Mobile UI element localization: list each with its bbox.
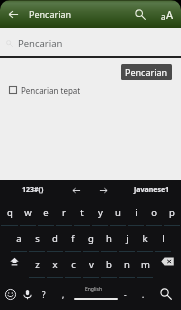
staticText: w <box>24 206 32 219</box>
staticText: p <box>169 206 175 219</box>
button[interactable]: Pencarian <box>0 28 181 58</box>
button[interactable]: s <box>28 224 46 250</box>
button[interactable]: Move cursor right <box>95 182 112 199</box>
staticText: Pencarian <box>29 8 72 20</box>
button[interactable]: , <box>55 286 71 302</box>
staticText: d <box>52 232 58 245</box>
button[interactable]: p <box>163 198 181 224</box>
staticText: i <box>135 206 138 219</box>
staticText: y <box>98 206 103 219</box>
button[interactable]: o <box>145 198 163 224</box>
button[interactable]: v <box>82 250 100 276</box>
staticText: Javanese1 <box>134 185 170 195</box>
button[interactable]: - <box>117 286 133 302</box>
staticText: l <box>162 232 165 245</box>
staticText: z <box>35 258 40 271</box>
staticText: h <box>106 232 112 245</box>
button[interactable]: i <box>127 198 145 224</box>
staticText: t <box>80 206 84 219</box>
button[interactable]: y <box>91 198 109 224</box>
staticText: o <box>151 206 157 219</box>
button[interactable]: English <box>70 276 122 310</box>
staticText: v <box>89 258 94 271</box>
button[interactable]: Backspace <box>154 250 181 276</box>
button[interactable]: q <box>0 198 19 224</box>
button[interactable]: 123#() <box>13 180 52 198</box>
button[interactable]: l <box>154 224 172 250</box>
button[interactable]: Shift <box>0 250 28 276</box>
staticText: q <box>7 206 13 219</box>
staticText: 123#() <box>22 185 44 195</box>
staticText: a <box>161 11 166 22</box>
button[interactable]: Pencarian <box>121 64 172 80</box>
button[interactable]: t <box>73 198 91 224</box>
button[interactable]: Text size <box>153 0 181 28</box>
button[interactable]: k <box>136 224 154 250</box>
button[interactable]: f <box>64 224 82 250</box>
button[interactable]: x <box>46 250 64 276</box>
button[interactable]: j <box>118 224 136 250</box>
staticText: u <box>115 206 121 219</box>
button[interactable]: m <box>136 250 154 276</box>
button[interactable]: d <box>46 224 64 250</box>
button[interactable]: Back <box>0 0 26 28</box>
button[interactable]: Move cursor left <box>68 182 85 199</box>
button[interactable]: Voice input <box>19 286 35 302</box>
button[interactable]: h <box>100 224 118 250</box>
button[interactable]: n <box>118 250 136 276</box>
staticText: ? <box>42 289 46 300</box>
button[interactable]: b <box>100 250 118 276</box>
button[interactable]: z <box>28 250 46 276</box>
staticText: s <box>35 232 40 245</box>
staticText: f <box>71 232 75 245</box>
button[interactable]: Pencarian tepat <box>0 82 181 98</box>
button[interactable]: Search <box>127 0 153 28</box>
button[interactable]: Emoji <box>2 286 18 302</box>
staticText: r <box>62 206 66 219</box>
button[interactable]: Search <box>157 285 175 303</box>
staticText: , <box>62 289 65 300</box>
button[interactable]: u <box>109 198 127 224</box>
button[interactable]: w <box>19 198 37 224</box>
staticText: x <box>52 258 58 271</box>
staticText: Pencarian <box>125 66 168 78</box>
button[interactable]: r <box>55 198 73 224</box>
staticText: n <box>124 258 130 271</box>
button[interactable]: ? <box>36 286 52 302</box>
staticText: j <box>126 232 129 245</box>
button[interactable]: Javanese1 <box>128 180 175 198</box>
button[interactable]: e <box>37 198 55 224</box>
staticText: k <box>142 232 148 245</box>
staticText: c <box>71 258 76 271</box>
staticText: Pencarian tepat <box>21 85 81 96</box>
staticText: g <box>88 232 94 245</box>
staticText: m <box>141 258 150 271</box>
staticText: English <box>85 286 103 293</box>
staticText: e <box>43 206 49 219</box>
staticText: A <box>166 7 174 22</box>
staticText: b <box>106 258 112 271</box>
button[interactable]: g <box>82 224 100 250</box>
button[interactable]: a <box>10 224 28 250</box>
staticText: a <box>16 232 22 245</box>
button[interactable]: . <box>135 286 151 302</box>
staticText: . <box>142 289 145 300</box>
staticText: Pencarian <box>18 37 63 50</box>
button[interactable]: c <box>64 250 82 276</box>
staticText: - <box>124 289 127 300</box>
